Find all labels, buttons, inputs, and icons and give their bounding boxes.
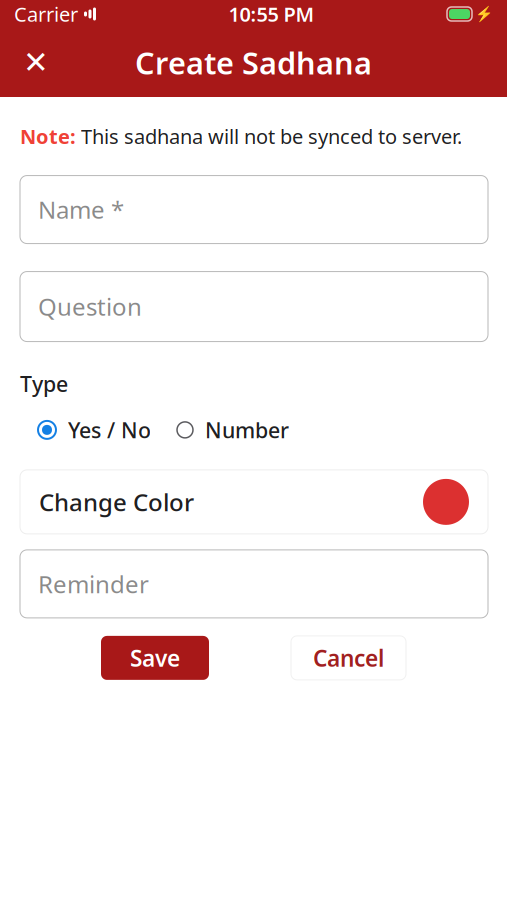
button[interactable]: Close xyxy=(13,39,59,85)
staticText: Create Sadhana xyxy=(135,42,372,83)
staticText: Yes / No xyxy=(68,416,151,444)
staticText: Cancel xyxy=(313,643,384,673)
staticText: Save xyxy=(130,643,180,673)
button[interactable]: Cancel xyxy=(291,636,406,680)
staticText: Change Color xyxy=(39,486,194,518)
button[interactable]: Save xyxy=(101,636,209,680)
staticText: Note: xyxy=(20,123,76,150)
staticText: Number xyxy=(205,416,289,444)
staticText: This sadhana will not be synced to serve… xyxy=(81,123,462,150)
button[interactable]: Reminder xyxy=(20,550,488,618)
button[interactable]: Yes / No xyxy=(20,410,159,450)
staticText: ⚡ xyxy=(475,6,493,22)
staticText: ✕ xyxy=(23,45,49,80)
staticText: Name * xyxy=(38,194,124,225)
button[interactable]: Change Color xyxy=(20,470,488,534)
staticText: 10:55 PM xyxy=(228,1,314,27)
button[interactable]: Number xyxy=(159,410,297,450)
staticText: Reminder xyxy=(38,568,149,600)
staticText: Question xyxy=(38,291,142,322)
staticText: Type xyxy=(20,370,68,398)
staticText: Carrier xyxy=(14,1,78,27)
